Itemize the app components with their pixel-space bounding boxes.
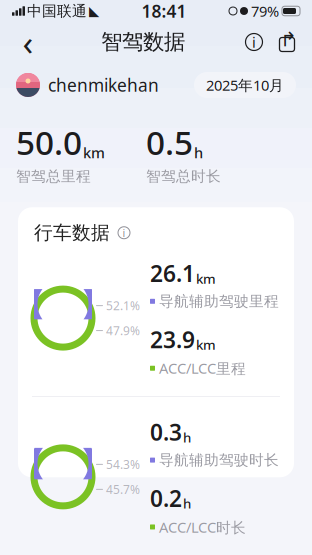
- staticText: 中国联通: [27, 2, 87, 20]
- staticText: ‹: [22, 19, 33, 65]
- staticText: 2025年10月: [206, 75, 284, 95]
- staticText: ACC/LCC时长: [159, 517, 246, 537]
- staticText: h: [183, 428, 191, 446]
- staticText: km: [196, 270, 216, 287]
- staticText: i: [252, 32, 256, 52]
- button[interactable]: 行车数据说明: [115, 224, 133, 242]
- staticText: 50.0: [16, 120, 82, 164]
- staticText: 0.5: [146, 120, 193, 164]
- staticText: 智驾数据: [101, 29, 185, 55]
- staticText: ACC/LCC里程: [159, 358, 246, 378]
- staticText: 23.9: [150, 324, 195, 354]
- staticText: chenmikehan: [48, 73, 159, 96]
- staticText: 行车数据: [34, 221, 110, 244]
- staticText: 47.9%: [106, 323, 140, 338]
- staticText: ↱: [280, 28, 297, 51]
- staticText: 18:41: [141, 0, 186, 22]
- staticText: 导航辅助驾驶里程: [159, 292, 279, 310]
- staticText: 54.3%: [106, 456, 140, 472]
- staticText: 0.2: [150, 483, 182, 513]
- button[interactable]: 返回: [8, 24, 48, 60]
- staticText: 26.1: [150, 258, 195, 288]
- staticText: 智驾总时长: [146, 167, 221, 185]
- staticText: 导航辅助驾驶时长: [159, 451, 279, 469]
- staticText: 0.3: [150, 417, 182, 447]
- staticText: 79%: [251, 1, 279, 21]
- staticText: h: [183, 494, 191, 512]
- staticText: i: [122, 226, 125, 240]
- staticText: h: [194, 143, 203, 162]
- button[interactable]: 分享: [270, 24, 304, 60]
- button[interactable]: 2025年10月: [194, 72, 296, 98]
- staticText: 智驾总里程: [16, 167, 91, 185]
- staticText: 45.7%: [106, 481, 140, 497]
- staticText: ◣: [89, 3, 99, 18]
- button[interactable]: 说明: [238, 24, 270, 60]
- staticText: km: [196, 336, 216, 353]
- staticText: 52.1%: [106, 298, 140, 314]
- staticText: km: [83, 143, 105, 162]
